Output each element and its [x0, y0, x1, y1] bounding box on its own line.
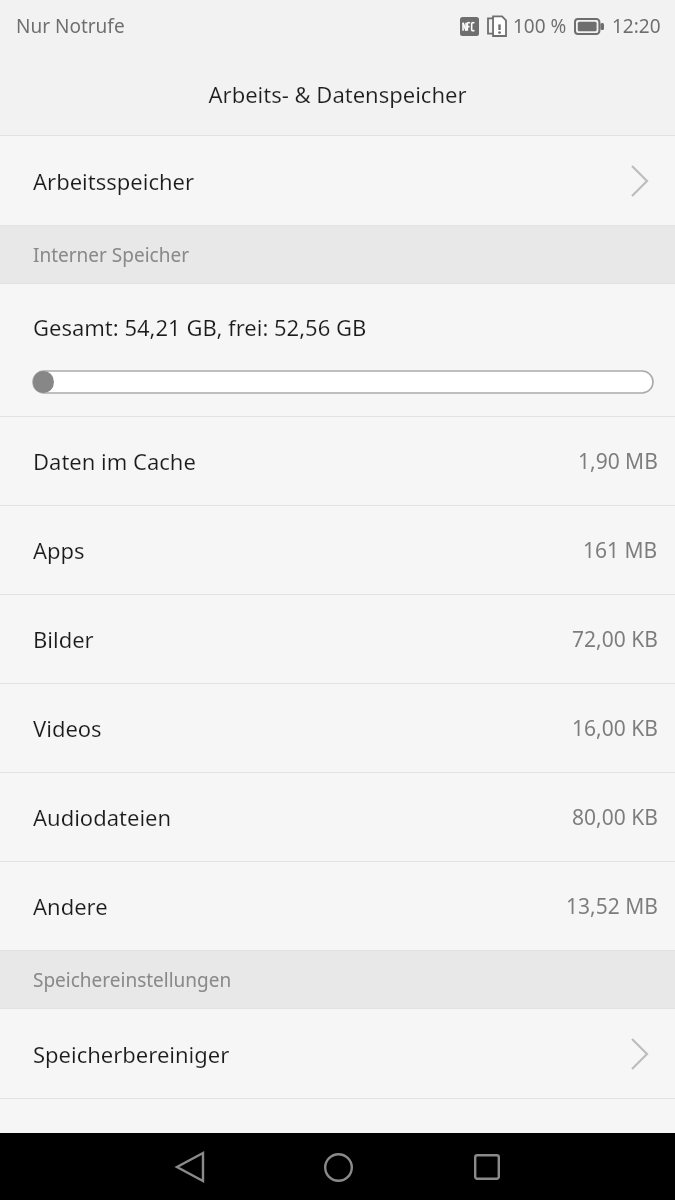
staticText: Speicherbereiniger: [33, 1039, 230, 1069]
staticText: 13,52 MB: [566, 892, 658, 921]
button[interactable]: Speicherbereiniger: [0, 1009, 675, 1099]
staticText: Arbeits- & Datenspeicher: [208, 79, 467, 109]
staticText: Bilder: [33, 624, 94, 654]
button[interactable]: Arbeitsspeicher: [0, 136, 675, 226]
button[interactable]: Back: [160, 1137, 220, 1197]
staticText: Daten im Cache: [33, 446, 196, 476]
staticText: 16,00 KB: [572, 714, 658, 743]
staticText: Nur Notrufe: [16, 13, 125, 39]
staticText: 161 MB: [583, 536, 658, 565]
staticText: Audiodateien: [33, 802, 172, 832]
staticText: Andere: [33, 891, 108, 921]
staticText: 80,00 KB: [572, 803, 658, 832]
staticText: Arbeitsspeicher: [33, 166, 195, 196]
button[interactable]: Home: [308, 1137, 368, 1197]
staticText: Gesamt: 54,21 GB, frei: 52,56 GB: [33, 312, 367, 342]
staticText: 72,00 KB: [572, 625, 658, 654]
staticText: Interner Speicher: [33, 242, 190, 268]
button[interactable]: Recent apps: [457, 1137, 517, 1197]
staticText: 12:20: [612, 13, 661, 39]
button[interactable]: Audiodateien: [0, 773, 675, 862]
button[interactable]: Videos: [0, 684, 675, 773]
staticText: Videos: [33, 713, 102, 743]
button[interactable]: Daten im Cache: [0, 417, 675, 506]
button[interactable]: Apps: [0, 506, 675, 595]
button[interactable]: Bilder: [0, 595, 675, 684]
staticText: Speichereinstellungen: [33, 967, 232, 993]
staticText: 1,90 MB: [578, 447, 658, 476]
staticText: Apps: [33, 535, 85, 565]
staticText: 100 %: [513, 13, 567, 39]
button[interactable]: Andere: [0, 862, 675, 951]
